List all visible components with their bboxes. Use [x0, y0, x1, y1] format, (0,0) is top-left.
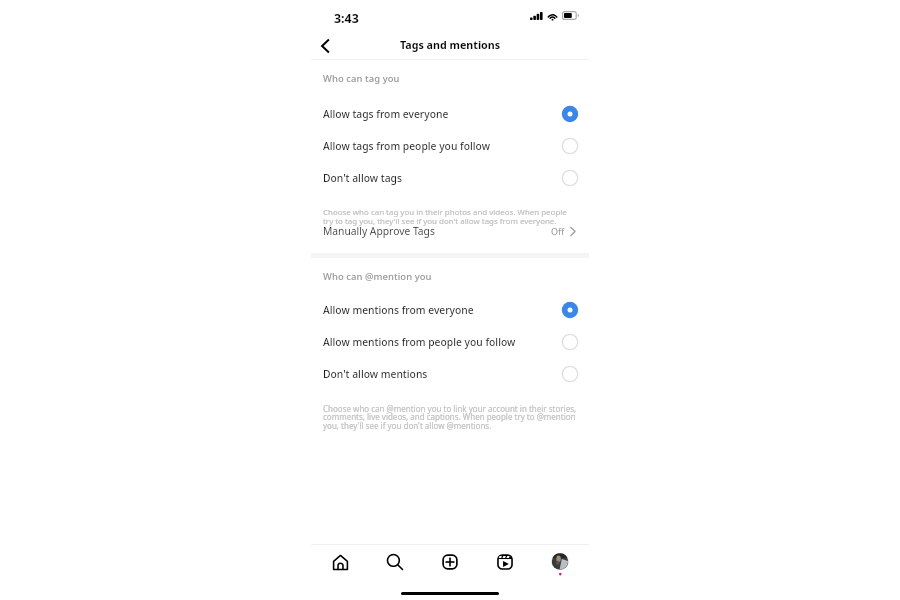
button[interactable]: Create — [434, 546, 466, 578]
staticText: Who can tag you — [323, 72, 400, 85]
button[interactable]: Don't allow mentions — [311, 358, 589, 390]
button[interactable]: Manually Approve Tags — [311, 222, 589, 240]
staticText: Allow mentions from everyone — [323, 303, 474, 317]
staticText: Allow mentions from people you follow — [323, 335, 516, 349]
staticText: Don't allow tags — [323, 171, 402, 185]
button[interactable]: Back — [311, 32, 339, 60]
staticText: Allow tags from everyone — [323, 107, 449, 121]
staticText: Choose who can tag you in their photos a… — [323, 207, 578, 226]
staticText: Off — [551, 225, 565, 237]
button[interactable]: Allow tags from people you follow — [311, 130, 589, 162]
staticText: Allow tags from people you follow — [323, 139, 490, 153]
button[interactable]: Reels — [489, 546, 521, 578]
button[interactable]: Home — [324, 546, 356, 578]
staticText: 3:43 — [334, 10, 359, 27]
button[interactable]: Allow mentions from everyone — [311, 294, 589, 326]
button[interactable]: Allow tags from everyone — [311, 98, 589, 130]
staticText: Choose who can @mention you to link your… — [323, 403, 586, 431]
button[interactable]: Search — [379, 546, 411, 578]
staticText: Who can @mention you — [323, 270, 432, 283]
staticText: Don't allow mentions — [323, 367, 428, 381]
staticText: Manually Approve Tags — [323, 224, 435, 238]
staticText: Tags and mentions — [400, 38, 501, 53]
button[interactable]: Profile — [544, 546, 576, 578]
button[interactable]: Don't allow tags — [311, 162, 589, 194]
button[interactable]: Allow mentions from people you follow — [311, 326, 589, 358]
